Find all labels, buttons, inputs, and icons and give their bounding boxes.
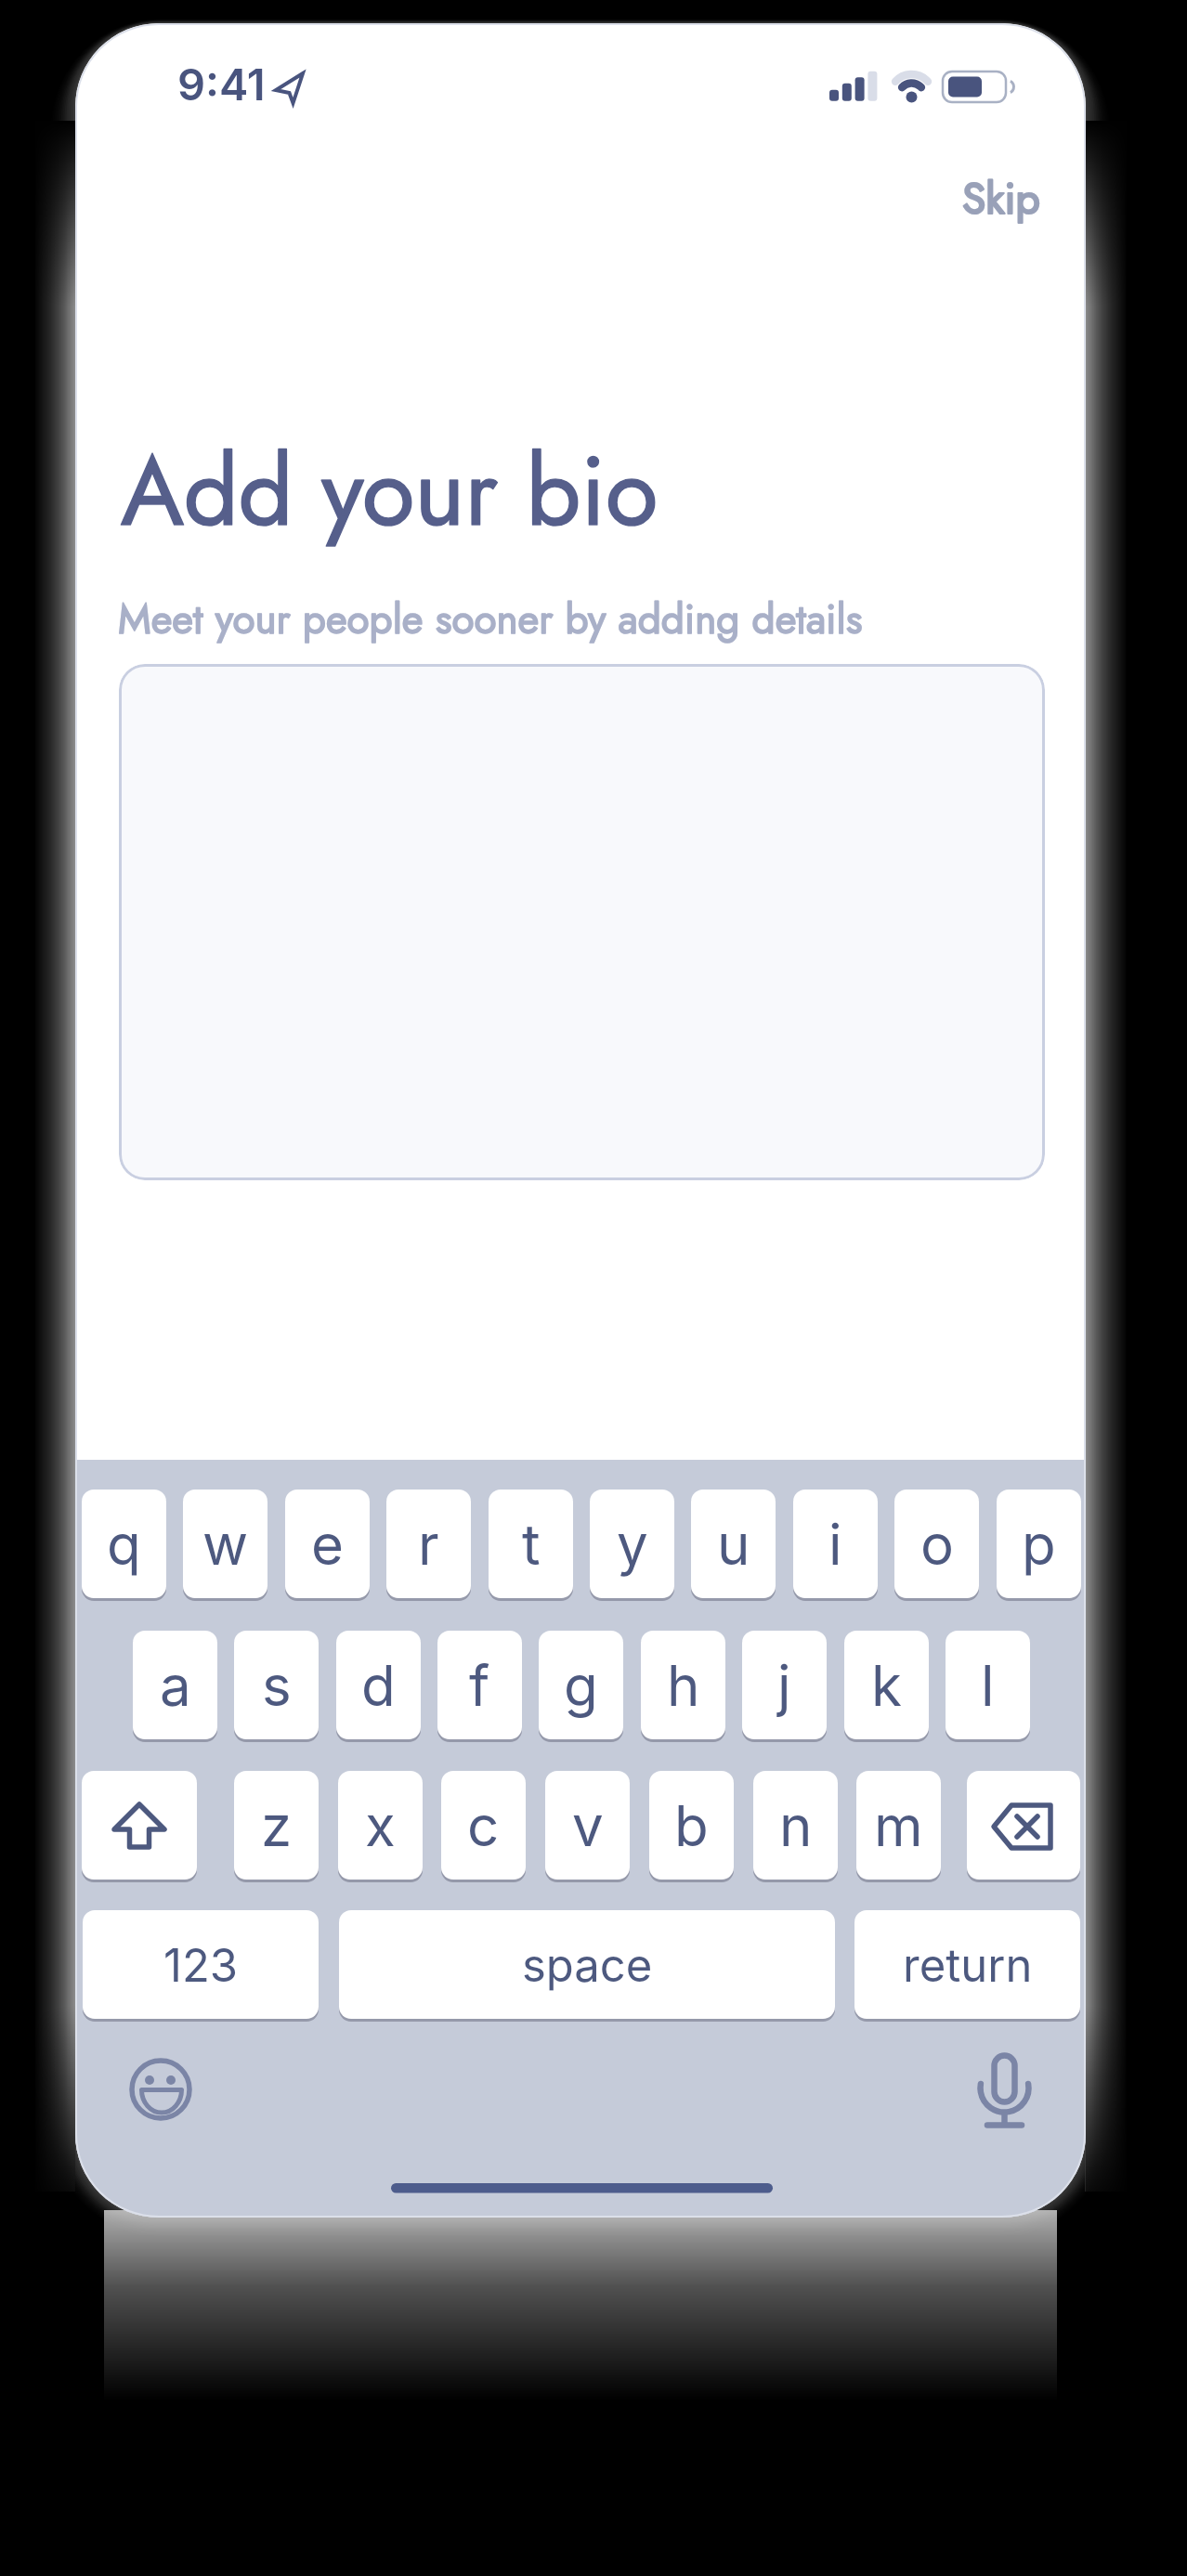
staticText: x	[365, 1792, 396, 1860]
button[interactable]: p	[997, 1490, 1081, 1601]
staticText: y	[617, 1511, 648, 1579]
staticText: a	[160, 1652, 191, 1720]
staticText: s	[262, 1652, 292, 1720]
button[interactable]: s	[234, 1631, 319, 1742]
button[interactable]: b	[649, 1771, 734, 1882]
staticText: Meet your people sooner by adding detail…	[118, 590, 863, 649]
staticText: h	[667, 1652, 700, 1720]
staticText: c	[467, 1792, 500, 1860]
staticText: b	[674, 1792, 709, 1860]
button[interactable]: r	[386, 1490, 471, 1601]
button[interactable]: x	[338, 1771, 423, 1882]
button[interactable]: y	[590, 1490, 674, 1601]
staticText: Skip	[962, 168, 1040, 229]
staticText: k	[871, 1652, 902, 1720]
staticText: Meet your people sooner by adding detail…	[118, 590, 863, 649]
button[interactable]: z	[234, 1771, 319, 1882]
button[interactable]: t	[489, 1490, 573, 1601]
button[interactable]: o	[894, 1490, 979, 1601]
button[interactable]: 123	[83, 1910, 319, 2022]
staticText: return	[903, 1938, 1033, 1993]
button[interactable]: e	[285, 1490, 370, 1601]
staticText: space	[522, 1938, 653, 1993]
button[interactable]: c	[441, 1771, 526, 1882]
staticText: j	[777, 1652, 791, 1720]
staticText: m	[874, 1792, 923, 1860]
button[interactable]: space	[339, 1910, 835, 2022]
button[interactable]: i	[793, 1490, 878, 1601]
button[interactable]: g	[539, 1631, 623, 1742]
staticText: t	[522, 1511, 541, 1579]
button[interactable]: l	[946, 1631, 1030, 1742]
staticText: r	[418, 1511, 439, 1579]
button[interactable]: a	[133, 1631, 217, 1742]
button[interactable]: h	[641, 1631, 725, 1742]
button[interactable]: m	[856, 1771, 941, 1882]
button[interactable]: n	[753, 1771, 838, 1882]
staticText: 123	[163, 1938, 239, 1993]
button[interactable]: f	[437, 1631, 522, 1742]
staticText: l	[981, 1652, 995, 1720]
staticText: v	[572, 1792, 604, 1860]
staticText: Add your bio	[121, 423, 659, 561]
button[interactable]	[82, 1771, 197, 1882]
staticText: d	[361, 1652, 396, 1720]
staticText: p	[1022, 1511, 1056, 1579]
button[interactable]: Skip	[929, 168, 1040, 229]
button[interactable]	[967, 1771, 1080, 1882]
button[interactable]: j	[742, 1631, 827, 1742]
button[interactable]: return	[854, 1910, 1080, 2022]
button[interactable]: u	[691, 1490, 776, 1601]
staticText: u	[717, 1511, 750, 1579]
staticText: z	[261, 1792, 293, 1860]
button[interactable]	[119, 664, 1045, 1180]
button[interactable]: q	[82, 1490, 166, 1601]
staticText: o	[920, 1511, 954, 1579]
staticText: i	[828, 1511, 842, 1579]
button[interactable]: k	[844, 1631, 929, 1742]
button[interactable]: w	[183, 1490, 267, 1601]
button[interactable]: v	[545, 1771, 630, 1882]
staticText: w	[202, 1511, 249, 1579]
staticText: e	[311, 1511, 344, 1579]
staticText: g	[564, 1652, 598, 1720]
button[interactable]: d	[336, 1631, 421, 1742]
staticText: Skip	[962, 168, 1040, 229]
staticText: Add your bio	[121, 423, 659, 561]
staticText: f	[469, 1652, 490, 1720]
staticText: 9:41	[177, 58, 266, 111]
staticText: q	[107, 1511, 141, 1579]
staticText: n	[779, 1792, 813, 1860]
